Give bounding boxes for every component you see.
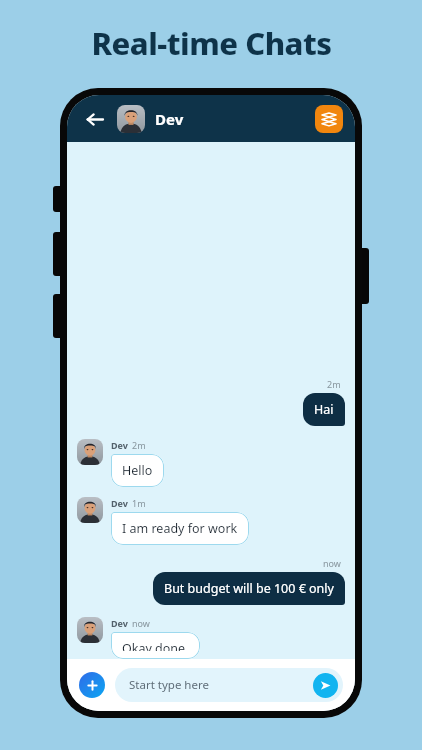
staticText: Dev (111, 617, 128, 629)
button[interactable]: Layers (315, 105, 343, 133)
staticText: 2m (327, 378, 341, 390)
button[interactable]: Dev (77, 617, 345, 659)
staticText: now (132, 617, 150, 629)
staticText: Real-time Chats (91, 22, 332, 64)
staticText: 2m (132, 439, 146, 451)
staticText: now (323, 557, 341, 569)
button[interactable]: Send (313, 673, 338, 698)
staticText: Hai (314, 401, 334, 418)
staticText: Start type here (129, 677, 209, 693)
staticText: Dev (111, 439, 128, 451)
button[interactable]: Add attachment (79, 672, 105, 698)
button[interactable]: Dev (77, 497, 345, 545)
staticText: Hello (122, 462, 153, 479)
staticText: But budget will be 100 € only (164, 580, 334, 597)
button[interactable]: Start type here (115, 668, 343, 702)
button[interactable]: now (77, 557, 345, 605)
button[interactable]: Back (79, 104, 109, 134)
button[interactable]: 2m (77, 378, 345, 426)
staticText: Dev (155, 109, 184, 129)
staticText: Dev (111, 497, 128, 509)
staticText: I am ready for work (122, 520, 238, 537)
button[interactable]: Dev (77, 439, 345, 487)
staticText: 1m (132, 497, 146, 509)
staticText: Okay done. (122, 640, 189, 651)
